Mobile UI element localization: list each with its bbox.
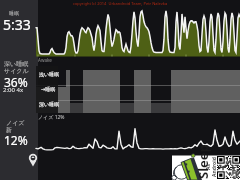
- staticText: copyright (c) 2014 Urbandroid Team, Petr…: [73, 1, 168, 6]
- staticText: 2:00 4x: [3, 86, 24, 94]
- staticText: Sleep: [194, 144, 212, 179]
- staticText: Awake: [38, 57, 52, 63]
- staticText: 5:33: [3, 15, 31, 34]
- staticText: 12%: [4, 132, 28, 148]
- staticText: As Android: [205, 157, 218, 177]
- staticText: 睡眠: [9, 10, 19, 16]
- staticText: ノイズ 12%: [38, 114, 65, 121]
- staticText: 深い睡眠: [39, 101, 60, 107]
- staticText: 深い睡眠 サイクル: [4, 60, 29, 75]
- staticText: 浅い睡眠: [39, 71, 60, 77]
- staticText: ノイズ 新: [6, 119, 25, 134]
- staticText: 36%: [4, 74, 28, 90]
- staticText: →睡眠: [41, 86, 56, 92]
